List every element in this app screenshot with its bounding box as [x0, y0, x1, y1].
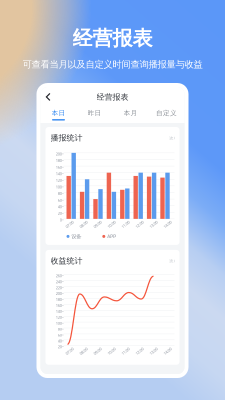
staticText: 经营报表 [72, 26, 152, 51]
staticText: 07:00 [65, 349, 74, 354]
staticText: 10:00 [107, 349, 116, 354]
staticText: (次) [168, 135, 174, 141]
staticText: 140 [56, 171, 62, 176]
staticText: 260 [56, 273, 62, 278]
staticText: 自定义 [156, 109, 177, 117]
staticText: 160 [56, 303, 62, 308]
staticText: 09:00 [93, 349, 102, 354]
staticText: 播报统计 [50, 133, 82, 143]
button[interactable]: 昨日 [76, 107, 112, 123]
staticText: 80 [58, 326, 62, 332]
staticText: 60 [58, 332, 62, 338]
staticText: 设备 [71, 233, 81, 240]
staticText: 08:00 [79, 349, 88, 354]
staticText: 140 [56, 309, 62, 314]
staticText: 180 [56, 158, 62, 163]
staticText: 13:00 [149, 222, 158, 227]
staticText: 80 [58, 191, 62, 196]
staticText: 0 [60, 217, 62, 223]
staticText: 昨日 [87, 109, 101, 117]
staticText: 100 [56, 184, 62, 190]
staticText: 120 [56, 315, 62, 320]
staticText: APP [107, 233, 116, 240]
staticText: 100 [56, 320, 62, 326]
staticText: (次) [168, 258, 174, 263]
button[interactable]: Back [40, 89, 56, 105]
staticText: 60 [58, 197, 62, 203]
staticText: 07:00 [65, 222, 74, 227]
staticText: 12:00 [135, 222, 144, 227]
staticText: 本月 [123, 109, 137, 117]
staticText: 40 [58, 204, 62, 209]
button[interactable]: 本月 [112, 107, 148, 123]
staticText: 可查看当月以及自定义时间查询播报量与收益 [22, 59, 202, 70]
staticText: 200 [56, 151, 62, 157]
staticText: 240 [56, 279, 62, 284]
staticText: 14:00 [163, 349, 172, 354]
staticText: 经营报表 [96, 92, 128, 102]
staticText: 200 [56, 291, 62, 296]
staticText: 10:00 [107, 222, 116, 227]
staticText: 14:00 [163, 222, 172, 227]
staticText: 120 [56, 178, 62, 183]
staticText: 20 [58, 211, 62, 216]
button[interactable]: 本日 [40, 107, 76, 123]
staticText: 11:00 [121, 222, 130, 227]
button[interactable]: 自定义 [148, 107, 184, 123]
staticText: 本日 [51, 109, 65, 117]
staticText: 09:00 [93, 222, 102, 227]
staticText: 收益统计 [50, 256, 82, 266]
staticText: 20 [58, 344, 62, 349]
staticText: 160 [56, 164, 62, 170]
staticText: 13:00 [149, 349, 158, 354]
staticText: 11:00 [121, 349, 130, 354]
staticText: 40 [58, 338, 62, 343]
staticText: 180 [56, 297, 62, 302]
staticText: 12:00 [135, 349, 144, 354]
staticText: 220 [56, 285, 62, 290]
staticText: 08:00 [79, 222, 88, 227]
